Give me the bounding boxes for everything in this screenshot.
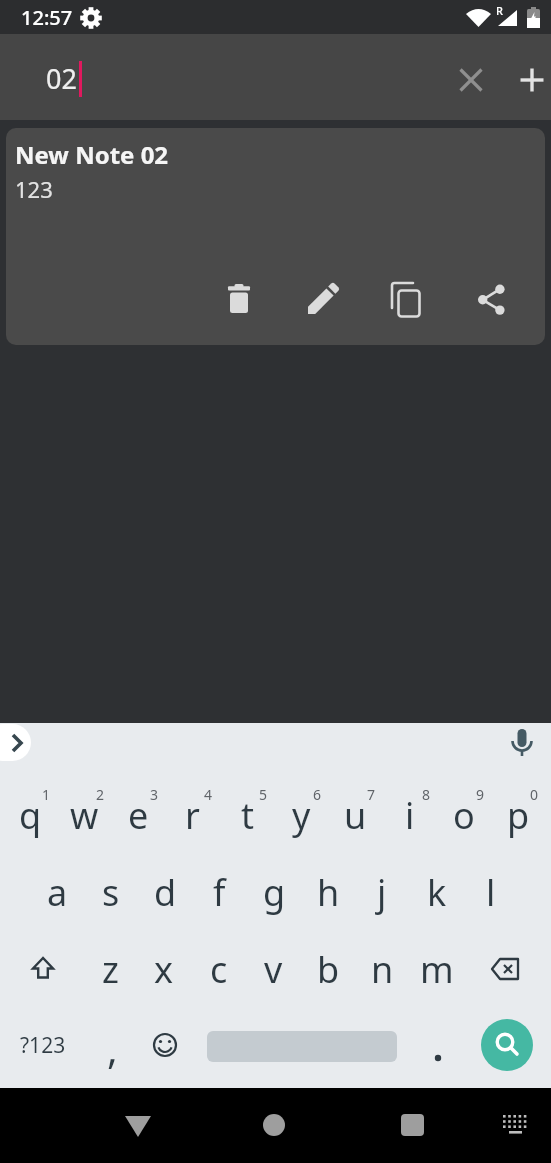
button[interactable]: New Note 02: [6, 128, 545, 345]
button[interactable]: ?123: [16, 1023, 70, 1067]
button[interactable]: 02: [0, 34, 551, 120]
button[interactable]: w: [57, 787, 111, 843]
button[interactable]: f: [192, 864, 246, 920]
button[interactable]: y: [274, 787, 328, 843]
staticText: b: [317, 945, 340, 994]
staticText: a: [47, 868, 68, 917]
button[interactable]: c: [192, 941, 246, 997]
button[interactable]: d: [138, 864, 192, 920]
button[interactable]: j: [355, 864, 409, 920]
button[interactable]: ,: [92, 1021, 132, 1073]
staticText: 02: [46, 60, 77, 94]
staticText: ,: [107, 1021, 118, 1073]
staticText: 3: [150, 785, 159, 804]
button[interactable]: a: [30, 864, 84, 920]
staticText: r: [185, 791, 200, 840]
staticText: q: [19, 791, 42, 840]
button[interactable]: o: [437, 787, 491, 843]
button[interactable]: [516, 64, 548, 96]
button[interactable]: [0, 724, 31, 761]
button[interactable]: q: [3, 787, 57, 843]
button[interactable]: m: [410, 941, 464, 997]
button[interactable]: z: [83, 941, 137, 997]
button[interactable]: [455, 64, 487, 96]
button[interactable]: [143, 1023, 187, 1067]
staticText: 2: [96, 785, 105, 804]
staticText: New Note 02: [15, 138, 169, 171]
staticText: s: [102, 868, 120, 917]
button[interactable]: [469, 278, 513, 322]
button[interactable]: [390, 1103, 434, 1147]
staticText: g: [263, 868, 286, 917]
button[interactable]: [418, 1021, 458, 1073]
button[interactable]: [484, 947, 528, 991]
staticText: h: [317, 868, 340, 917]
staticText: ?123: [20, 1031, 66, 1060]
button[interactable]: n: [355, 941, 409, 997]
button[interactable]: [217, 277, 261, 321]
button[interactable]: [505, 726, 539, 760]
staticText: l: [486, 868, 496, 917]
button[interactable]: [21, 947, 65, 991]
button[interactable]: h: [301, 864, 355, 920]
button[interactable]: l: [464, 864, 518, 920]
button[interactable]: b: [301, 941, 355, 997]
button[interactable]: s: [84, 864, 138, 920]
staticText: n: [371, 945, 394, 994]
staticText: t: [241, 791, 254, 840]
button[interactable]: g: [247, 864, 301, 920]
staticText: e: [128, 791, 149, 840]
staticText: 5: [259, 785, 268, 804]
staticText: j: [377, 868, 387, 917]
staticText: i: [405, 791, 415, 840]
button[interactable]: [385, 278, 429, 322]
staticText: 9: [476, 785, 485, 804]
staticText: 0: [530, 785, 539, 804]
staticText: x: [154, 945, 174, 994]
button[interactable]: k: [410, 864, 464, 920]
staticText: y: [292, 791, 311, 840]
staticText: R: [496, 3, 503, 18]
staticText: c: [210, 945, 228, 994]
staticText: z: [102, 945, 119, 994]
staticText: m: [420, 945, 454, 994]
staticText: v: [264, 945, 283, 994]
staticText: u: [344, 791, 367, 840]
staticText: 123: [15, 174, 53, 204]
staticText: 1: [42, 785, 51, 804]
button[interactable]: [116, 1103, 160, 1147]
staticText: 7: [367, 785, 376, 804]
staticText: f: [213, 868, 226, 917]
button[interactable]: r: [165, 787, 219, 843]
staticText: 12:57: [21, 4, 73, 31]
button[interactable]: i: [383, 787, 437, 843]
staticText: o: [453, 791, 475, 840]
button[interactable]: [300, 278, 344, 322]
button[interactable]: e: [111, 787, 165, 843]
button[interactable]: x: [137, 941, 191, 997]
staticText: 6: [313, 785, 322, 804]
staticText: k: [427, 868, 447, 917]
button[interactable]: u: [328, 787, 382, 843]
button[interactable]: [252, 1103, 296, 1147]
button[interactable]: v: [246, 941, 300, 997]
staticText: w: [70, 791, 99, 840]
staticText: 4: [204, 785, 213, 804]
button[interactable]: t: [220, 787, 274, 843]
staticText: p: [507, 791, 530, 840]
staticText: d: [154, 868, 177, 917]
button[interactable]: [496, 1110, 536, 1142]
staticText: 8: [422, 785, 431, 804]
button[interactable]: [481, 1019, 533, 1071]
button[interactable]: p: [491, 787, 545, 843]
